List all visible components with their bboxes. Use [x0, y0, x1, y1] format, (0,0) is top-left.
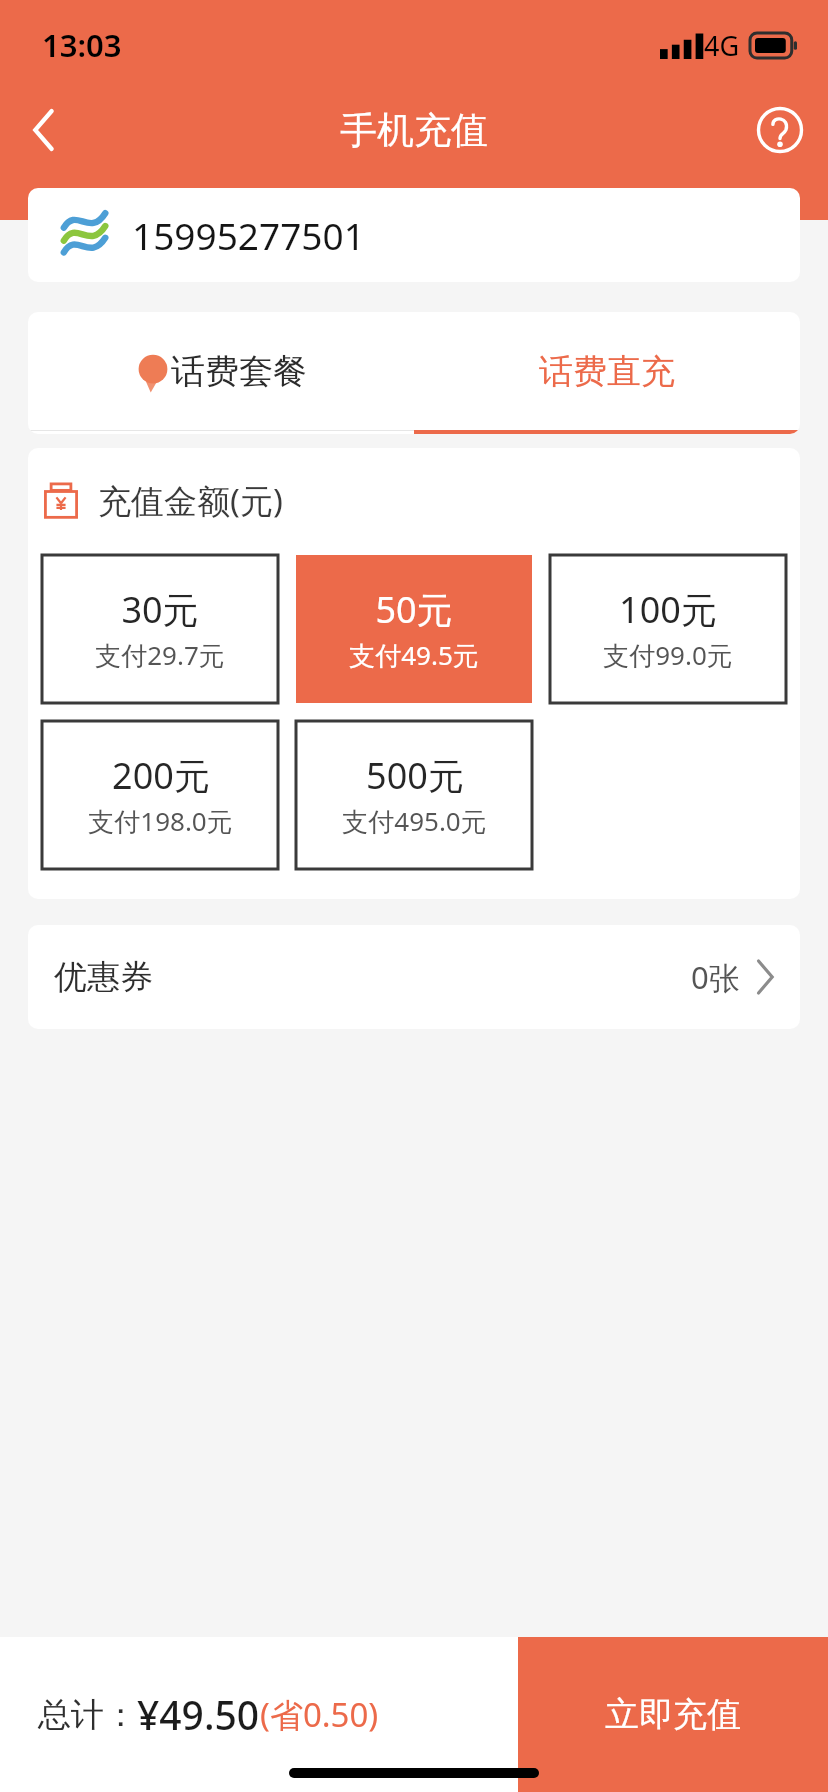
staticText: 话费直充: [539, 350, 675, 393]
staticText: 13:03: [42, 24, 122, 66]
staticText: 0张: [691, 956, 740, 998]
staticText: 4G: [704, 27, 740, 64]
staticText: 100元: [619, 585, 717, 634]
staticText: 立即充值: [605, 1693, 741, 1736]
button[interactable]: 立即充值: [518, 1637, 828, 1792]
staticText: 总计：: [38, 1694, 137, 1736]
staticText: 支付49.5元: [349, 637, 479, 673]
staticText: 支付198.0元: [88, 803, 233, 839]
staticText: 充值金额(元): [98, 478, 283, 523]
button[interactable]: 50元: [296, 555, 532, 703]
button[interactable]: 话费套餐: [28, 312, 414, 430]
button[interactable]: 200元: [42, 721, 278, 869]
staticText: 话费套餐: [171, 350, 307, 393]
staticText: (省0.50): [260, 1692, 379, 1737]
button[interactable]: 15995277501: [28, 188, 800, 282]
staticText: 200元: [112, 751, 210, 800]
staticText: 500元: [366, 751, 464, 800]
staticText: 15995277501: [132, 210, 365, 260]
staticText: ¥49.50: [137, 1688, 260, 1741]
staticText: 50元: [375, 585, 453, 634]
button[interactable]: 优惠券: [28, 925, 800, 1029]
staticText: 优惠券: [54, 956, 153, 998]
button[interactable]: 30元: [42, 555, 278, 703]
staticText: 手机充值: [340, 107, 488, 154]
staticText: 支付495.0元: [342, 803, 487, 839]
button[interactable]: Back: [0, 90, 88, 170]
staticText: 支付99.0元: [603, 637, 733, 673]
staticText: 30元: [121, 585, 199, 634]
button[interactable]: 话费直充: [414, 312, 800, 430]
staticText: 支付29.7元: [95, 637, 225, 673]
button[interactable]: 100元: [550, 555, 786, 703]
button[interactable]: 500元: [296, 721, 532, 869]
button[interactable]: Help: [732, 90, 828, 170]
